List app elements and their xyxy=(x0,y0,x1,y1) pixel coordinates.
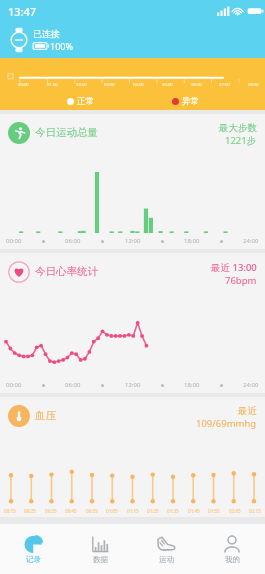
staticText: 00:15 xyxy=(4,508,16,514)
staticText: 00:00 xyxy=(6,381,22,389)
staticText: 02:15 xyxy=(249,508,261,514)
staticText: 00:55 xyxy=(86,508,98,514)
staticText: 06:00 xyxy=(191,82,202,88)
staticText: 00:25 xyxy=(24,508,36,514)
staticText: 06:00 xyxy=(65,237,81,245)
staticText: 01:00 xyxy=(47,82,58,88)
staticText: 最近 xyxy=(238,405,257,417)
staticText: 01:05 xyxy=(106,508,118,514)
button[interactable]: 今日心率统计 xyxy=(0,253,265,393)
staticText: 1221步 xyxy=(225,134,257,147)
staticText: 今日心率统计 xyxy=(35,265,98,278)
staticText: 24:00 xyxy=(243,237,259,245)
staticText: 最近 13:00 xyxy=(211,261,257,274)
button[interactable]: 记录 xyxy=(0,524,67,574)
staticText: 07:00 xyxy=(219,82,230,88)
staticText: 109/69mmhg xyxy=(196,417,257,430)
staticText: 76bpm xyxy=(225,274,257,287)
staticText: 01:45 xyxy=(188,508,200,514)
staticText: 00:00 xyxy=(6,237,22,245)
staticText: 08:00 xyxy=(248,82,259,88)
button[interactable]: 血压 xyxy=(0,397,265,517)
staticText: 运动 xyxy=(159,555,174,564)
staticText: 18:00 xyxy=(184,237,200,245)
staticText: 异常 xyxy=(182,96,199,107)
staticText: 18:00 xyxy=(184,381,200,389)
staticText: 00:00 xyxy=(18,82,29,88)
staticText: 记录 xyxy=(26,555,41,564)
staticText: 12:00 xyxy=(125,381,141,389)
staticText: 最大步数 xyxy=(219,122,257,134)
staticText: 03:00 xyxy=(104,82,115,88)
staticText: 00:35 xyxy=(45,508,57,514)
staticText: 06:00 xyxy=(65,381,81,389)
staticText: 今日运动总量 xyxy=(35,126,98,139)
staticText: 01:35 xyxy=(167,508,179,514)
staticText: 01:25 xyxy=(147,508,159,514)
staticText: 05:00 xyxy=(162,82,173,88)
staticText: 04:00 xyxy=(133,82,144,88)
staticText: 100% xyxy=(50,40,73,52)
staticText: 已连接 xyxy=(33,28,60,39)
staticText: 01:15 xyxy=(127,508,139,514)
staticText: 数据 xyxy=(93,555,108,564)
button[interactable]: 运动 xyxy=(133,524,199,574)
staticText: 02:00 xyxy=(76,82,87,88)
button[interactable]: 今日运动总量 xyxy=(0,114,265,249)
staticText: 02:05 xyxy=(229,508,241,514)
staticText: 01:55 xyxy=(208,508,220,514)
staticText: 24:00 xyxy=(243,381,259,389)
staticText: 00:45 xyxy=(65,508,77,514)
staticText: 正常 xyxy=(77,96,94,107)
staticText: 我的 xyxy=(225,555,240,564)
staticText: 12:00 xyxy=(125,237,141,245)
staticText: 血压 xyxy=(35,409,56,422)
button[interactable]: 我的 xyxy=(199,524,265,574)
staticText: 13:47 xyxy=(8,4,37,19)
button[interactable]: 数据 xyxy=(67,524,133,574)
